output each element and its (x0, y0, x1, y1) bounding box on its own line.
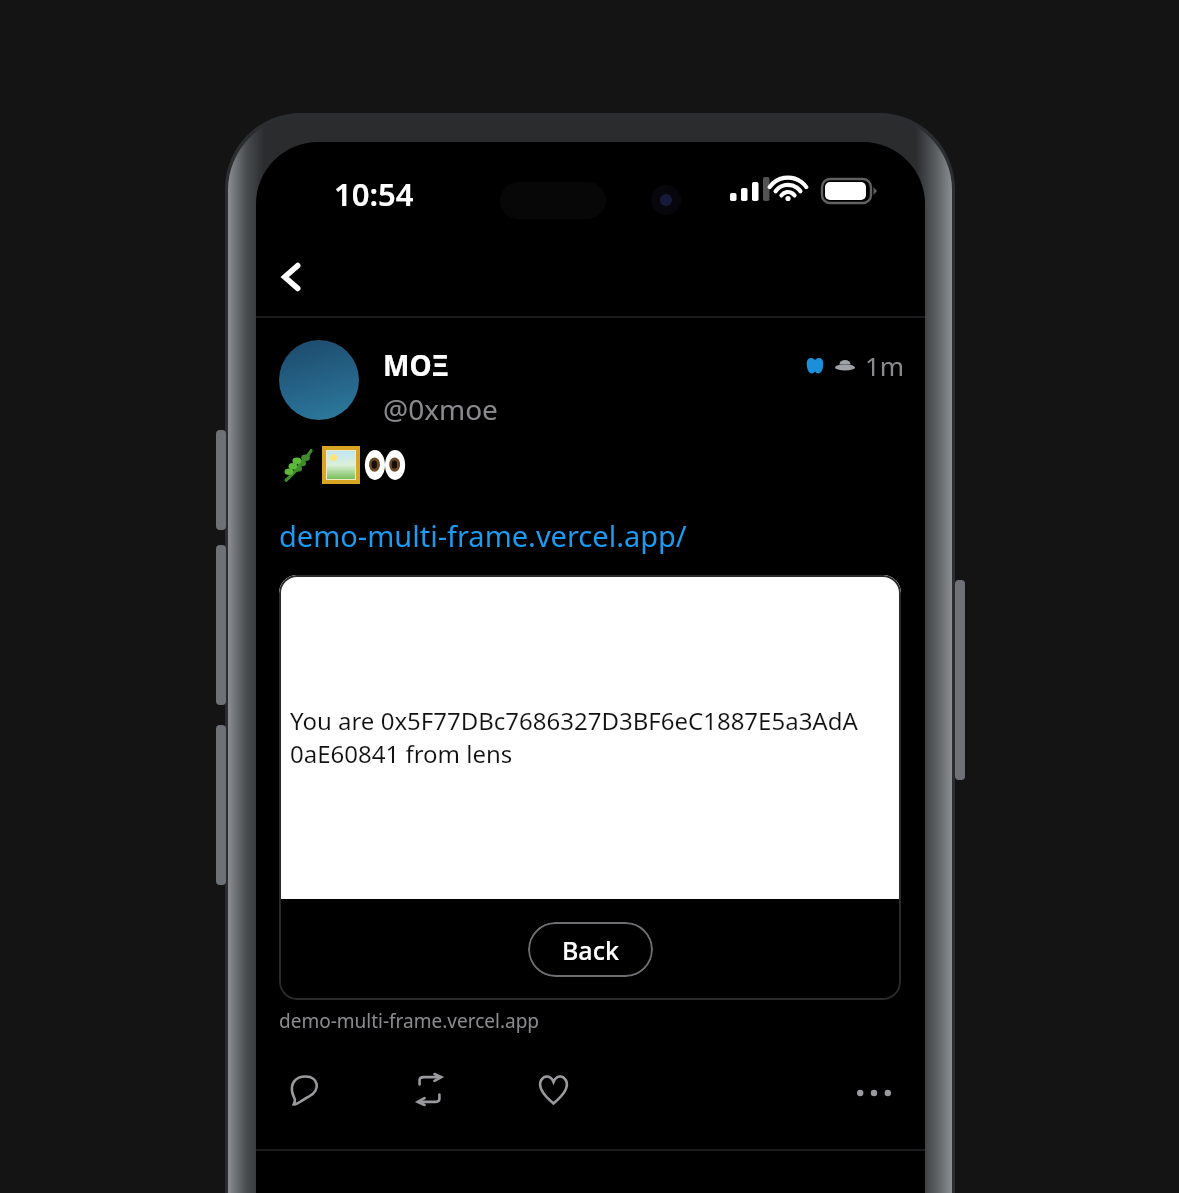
button[interactable]: Back (262, 247, 322, 307)
button[interactable]: Like (522, 1058, 584, 1120)
button[interactable]: More options (843, 1062, 905, 1124)
button[interactable]: demo-multi-frame.vercel.app/ (279, 516, 687, 555)
staticText: Back (562, 933, 619, 967)
button[interactable]: Repost (398, 1058, 460, 1120)
button[interactable]: Reply (274, 1058, 336, 1120)
button[interactable]: Back (528, 922, 653, 977)
button[interactable] (279, 340, 359, 420)
staticText: 10:54 (334, 173, 414, 215)
button[interactable]: MOΞ (383, 346, 450, 384)
button[interactable]: @0xmoe (383, 390, 498, 428)
staticText: You are 0x5F77DBc7686327D3BF6eC1887E5a3A… (290, 704, 871, 770)
staticText: 1m (865, 348, 905, 383)
staticText: demo-multi-frame.vercel.app (279, 1008, 539, 1034)
